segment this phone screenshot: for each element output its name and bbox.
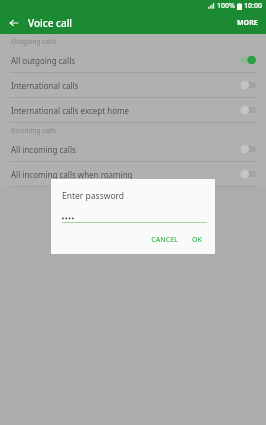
staticText: Outgoing calls [11,37,56,46]
button[interactable]: All incoming calls when roaming [0,162,266,186]
staticText: All incoming calls [11,144,236,155]
staticText: MORE [237,18,258,28]
staticText: 10:00 [244,1,262,11]
button[interactable]: All outgoing calls [0,48,266,72]
staticText: 100% [217,1,235,11]
staticText: Incoming calls [11,126,56,135]
button[interactable]: MORE [229,12,266,34]
button[interactable]: All incoming calls [0,137,266,161]
staticText: Enter password [62,190,125,202]
button[interactable]: International calls except home [0,98,266,122]
button[interactable]: Navigate up [5,14,23,32]
staticText: OK [192,235,202,245]
button[interactable]: International calls [0,73,266,97]
staticText: CANCEL [151,235,178,245]
button[interactable]: CANCEL [146,232,183,248]
staticText: International calls except home [11,105,236,116]
staticText: All outgoing calls [11,55,236,66]
button[interactable]: OK [187,232,207,248]
staticText: International calls [11,80,236,91]
staticText: All incoming calls when roaming [11,169,236,180]
staticText: Voice call [28,16,73,30]
